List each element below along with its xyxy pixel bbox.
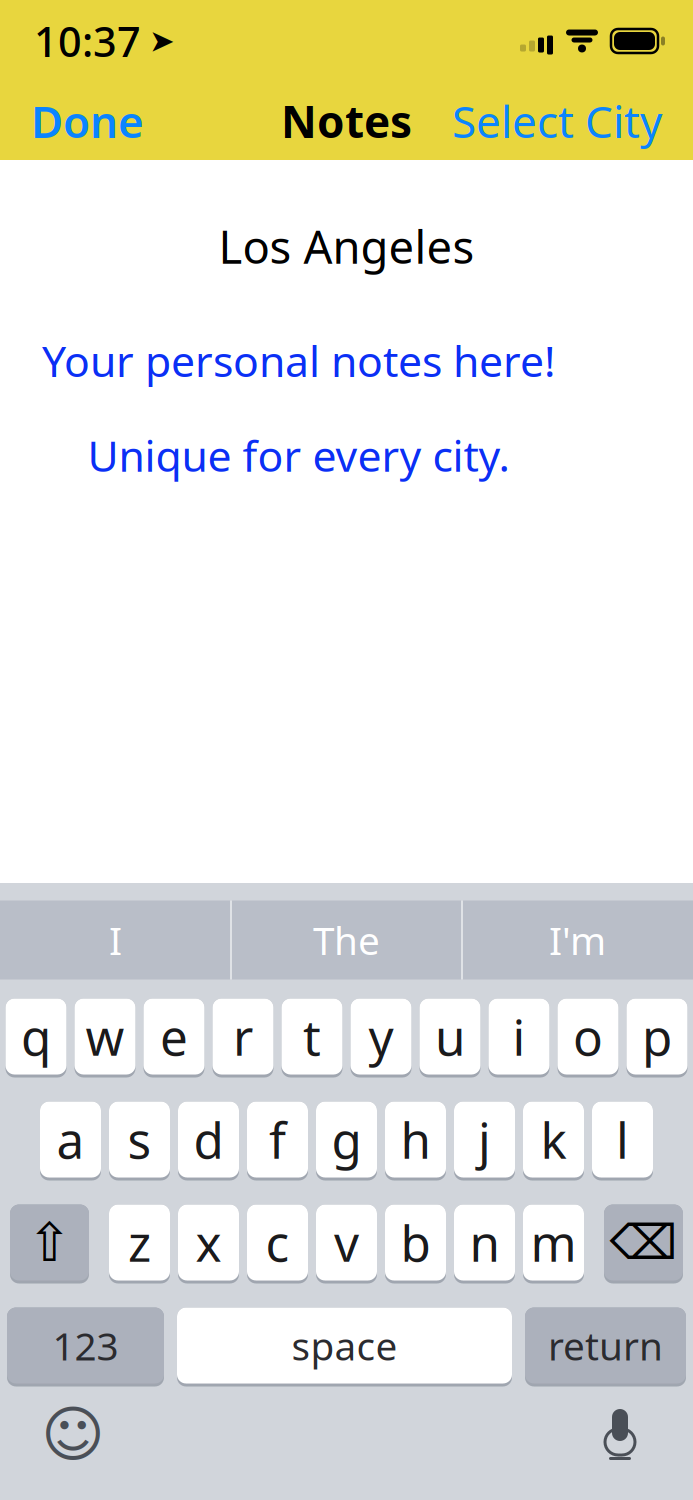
staticText: z: [128, 1210, 151, 1275]
staticText: Select City: [452, 92, 662, 150]
staticText: b: [400, 1210, 430, 1275]
button[interactable]: q: [5, 998, 66, 1077]
button[interactable]: b: [385, 1204, 446, 1283]
button[interactable]: g: [316, 1101, 377, 1180]
staticText: e: [160, 1004, 188, 1069]
staticText: s: [127, 1107, 151, 1172]
staticText: 123: [52, 1320, 118, 1371]
button[interactable]: s: [109, 1101, 170, 1180]
button[interactable]: c: [247, 1204, 308, 1283]
staticText: m: [530, 1210, 576, 1275]
button[interactable]: l: [592, 1101, 653, 1180]
staticText: ⇧: [27, 1212, 72, 1273]
staticText: The: [313, 914, 380, 966]
button[interactable]: Done: [19, 80, 156, 162]
staticText: y: [368, 1004, 393, 1069]
button[interactable]: Dictation: [585, 1399, 655, 1469]
staticText: r: [233, 1004, 253, 1069]
staticText: t: [303, 1004, 321, 1069]
staticText: q: [21, 1004, 51, 1069]
button[interactable]: m: [523, 1204, 584, 1283]
staticText: ⌫: [609, 1215, 677, 1270]
button[interactable]: k: [523, 1101, 584, 1180]
staticText: g: [331, 1107, 361, 1172]
button[interactable]: e: [143, 998, 204, 1077]
button[interactable]: Select City: [440, 80, 674, 162]
staticText: n: [469, 1210, 499, 1275]
staticText: I'm: [549, 914, 606, 966]
staticText: Unique for every city.: [87, 427, 509, 484]
button[interactable]: y: [350, 998, 411, 1077]
button[interactable]: p: [626, 998, 687, 1077]
button[interactable]: I: [1, 900, 230, 979]
staticText: Notes: [281, 92, 412, 150]
staticText: w: [85, 1004, 124, 1069]
button[interactable]: o: [557, 998, 618, 1077]
button[interactable]: n: [454, 1204, 515, 1283]
staticText: space: [291, 1320, 397, 1371]
button[interactable]: d: [178, 1101, 239, 1180]
staticText: f: [269, 1107, 286, 1172]
staticText: return: [548, 1320, 663, 1371]
staticText: ➤: [149, 24, 175, 58]
button[interactable]: The: [232, 900, 461, 979]
button[interactable]: w: [74, 998, 135, 1077]
button[interactable]: r: [212, 998, 273, 1077]
staticText: Los Angeles: [218, 216, 474, 276]
staticText: I: [109, 914, 122, 966]
button[interactable]: I'm: [463, 900, 692, 979]
button[interactable]: j: [454, 1101, 515, 1180]
staticText: x: [195, 1210, 221, 1275]
button[interactable]: v: [316, 1204, 377, 1283]
button[interactable]: h: [385, 1101, 446, 1180]
button[interactable]: ⌫: [604, 1204, 683, 1283]
staticText: i: [512, 1004, 525, 1069]
button[interactable]: space: [177, 1307, 512, 1386]
staticText: k: [540, 1107, 566, 1172]
staticText: a: [56, 1107, 84, 1172]
button[interactable]: a: [40, 1101, 101, 1180]
staticText: o: [573, 1004, 603, 1069]
button[interactable]: ⇧: [10, 1204, 89, 1283]
button[interactable]: t: [281, 998, 342, 1077]
staticText: u: [435, 1004, 465, 1069]
staticText: d: [193, 1107, 223, 1172]
staticText: p: [642, 1004, 672, 1069]
staticText: v: [334, 1210, 359, 1275]
staticText: Done: [31, 92, 144, 150]
staticText: h: [400, 1107, 430, 1172]
button[interactable]: u: [419, 998, 480, 1077]
button[interactable]: x: [178, 1204, 239, 1283]
staticText: c: [265, 1210, 289, 1275]
staticText: j: [478, 1107, 491, 1172]
button[interactable]: f: [247, 1101, 308, 1180]
staticText: l: [616, 1107, 629, 1172]
button[interactable]: Emoji keyboard: [38, 1399, 108, 1469]
staticText: ☺: [41, 1400, 105, 1469]
button[interactable]: z: [109, 1204, 170, 1283]
button[interactable]: i: [488, 998, 549, 1077]
staticText: Your personal notes here!: [42, 332, 555, 389]
button[interactable]: 123: [7, 1307, 164, 1386]
staticText: 10:37: [34, 14, 141, 68]
button[interactable]: return: [525, 1307, 686, 1386]
